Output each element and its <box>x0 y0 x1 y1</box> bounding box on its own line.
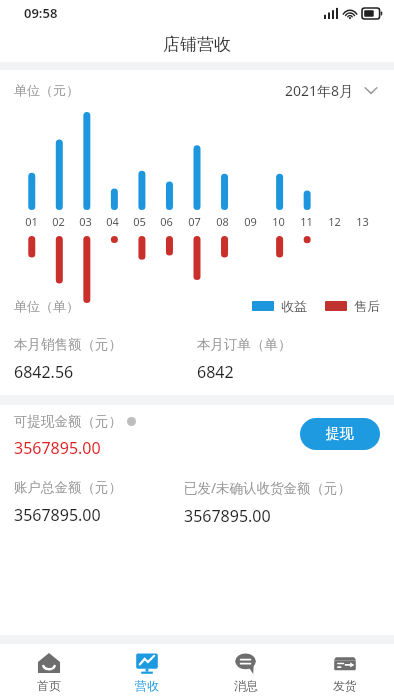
staticText: 10 <box>272 214 285 229</box>
staticText: 营收 <box>135 678 159 693</box>
staticText: 3567895.00 <box>184 505 271 527</box>
staticText: 收益 <box>281 298 307 314</box>
staticText: 已发/未确认收货金额（元） <box>184 479 352 497</box>
staticText: 04 <box>106 214 119 229</box>
button[interactable]: 首页 <box>0 644 98 700</box>
staticText: 06 <box>160 214 173 229</box>
staticText: 09:58 <box>24 4 58 22</box>
other: 首页 <box>37 651 61 675</box>
staticText: 本月订单（单） <box>197 336 292 353</box>
other: 消息 <box>234 651 258 675</box>
button[interactable]: Info <box>127 417 136 426</box>
staticText: 单位（单） <box>14 298 79 314</box>
staticText: 13 <box>356 214 369 229</box>
staticText: 首页 <box>37 678 61 693</box>
staticText: 12 <box>328 214 341 229</box>
button[interactable]: 提现 <box>300 418 380 450</box>
staticText: 3567895.00 <box>14 504 101 526</box>
staticText: 6842.56 <box>14 361 74 383</box>
other: 营收 <box>135 651 159 675</box>
staticText: 03 <box>79 214 92 229</box>
staticText: 08 <box>216 214 229 229</box>
staticText: 07 <box>188 214 201 229</box>
staticText: 可提现金额（元） <box>14 413 122 430</box>
staticText: 01 <box>25 214 38 229</box>
staticText: 2021年8月 <box>285 81 354 100</box>
staticText: 提现 <box>326 425 354 443</box>
staticText: 店铺营收 <box>163 34 231 55</box>
staticText: 09 <box>244 214 257 229</box>
staticText: 6842 <box>197 361 234 383</box>
staticText: 11 <box>300 214 313 229</box>
staticText: 本月销售额（元） <box>14 336 122 353</box>
staticText: 消息 <box>234 678 258 693</box>
button[interactable]: 消息 <box>196 644 295 700</box>
other: Select month <box>364 86 378 95</box>
staticText: 05 <box>133 214 146 229</box>
staticText: 售后 <box>354 298 380 314</box>
staticText: 3567895.00 <box>14 437 101 459</box>
button[interactable]: 营收 <box>98 644 196 700</box>
button[interactable]: 发货 <box>295 644 394 700</box>
staticText: 发货 <box>333 678 357 693</box>
other: 发货 <box>333 651 357 675</box>
staticText: 账户总金额（元） <box>14 479 122 496</box>
staticText: 02 <box>52 214 65 229</box>
button[interactable]: 2021年8月 <box>283 77 380 104</box>
staticText: 单位（元） <box>14 82 79 98</box>
